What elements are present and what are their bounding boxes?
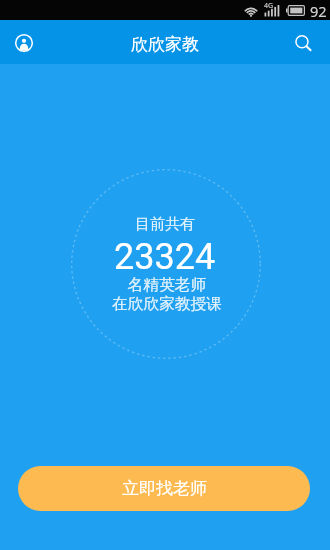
staticText: 立即找老师 (122, 478, 207, 499)
staticText: 欣欣家教 (131, 34, 199, 55)
staticText: 名精英老师 在欣欣家教授课 (112, 275, 222, 314)
button[interactable]: Account (5, 24, 43, 62)
staticText: 4G (264, 1, 274, 11)
button[interactable]: 立即找老师 (18, 466, 310, 511)
button[interactable]: Search (284, 23, 322, 61)
staticText: 23324 (114, 236, 216, 278)
staticText: 目前共有 (135, 215, 195, 234)
staticText: 92 (310, 1, 327, 21)
